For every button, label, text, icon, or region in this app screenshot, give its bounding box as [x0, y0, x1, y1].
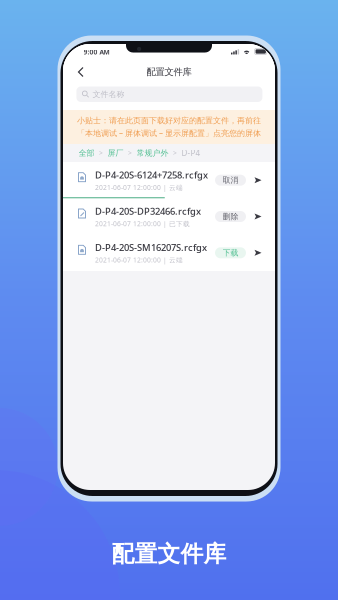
staticText: 2021-06-07 12:00:00 | 云端	[95, 183, 183, 192]
staticText: 2021-06-07 12:00:00 | 已下载	[95, 219, 190, 228]
staticText: D-P4-20S-SM16207S.rcfgx	[95, 241, 207, 254]
staticText: D-P4	[181, 148, 200, 158]
button[interactable]: D-P4-20S-6124+7258.rcfgx	[63, 162, 275, 198]
staticText: 屏厂	[107, 148, 123, 158]
staticText: 下载	[222, 248, 238, 258]
staticText: 文件名称	[92, 89, 124, 99]
button[interactable]: D-P4-20S-DP32466.rcfgx	[63, 198, 275, 235]
button[interactable]: 全部	[78, 148, 94, 158]
staticText: 删除	[222, 212, 238, 221]
button[interactable]: 屏厂	[107, 148, 123, 158]
staticText: >	[128, 149, 132, 157]
staticText: D-P4-20S-DP32466.rcfgx	[95, 205, 201, 217]
staticText: 配置文件库	[146, 66, 191, 78]
staticText: 小贴士：请在此页面下载好对应的配置文件，再前往	[77, 116, 261, 126]
staticText: 2021-06-07 12:00:00 | 云端	[95, 256, 183, 264]
staticText: 「本地调试 – 屏体调试 – 显示屏配置」点亮您的屏体	[77, 128, 261, 138]
staticText: >	[99, 149, 103, 157]
staticText: >	[173, 149, 177, 157]
staticText: D-P4-20S-6124+7258.rcfgx	[95, 169, 208, 181]
staticText: 常规户外	[136, 148, 168, 158]
staticText: 9:00 AM	[83, 47, 109, 56]
button[interactable]: 文件名称	[76, 86, 262, 102]
staticText: 取消	[222, 175, 238, 185]
button[interactable]: Back	[71, 61, 91, 83]
staticText: 全部	[78, 148, 94, 158]
button[interactable]: 常规户外	[136, 148, 168, 158]
staticText: 配置文件库	[111, 540, 226, 568]
button[interactable]: D-P4-20S-SM16207S.rcfgx	[63, 235, 275, 271]
